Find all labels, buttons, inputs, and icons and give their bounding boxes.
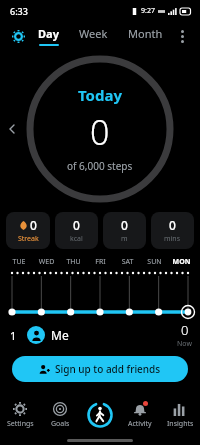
staticText: 0 xyxy=(30,217,37,233)
staticText: SUN xyxy=(141,257,168,267)
staticText: Streak xyxy=(18,234,39,244)
button[interactable]: Day xyxy=(36,26,61,46)
button[interactable]: Insights xyxy=(160,395,200,435)
button[interactable]: 0 xyxy=(6,212,50,249)
staticText: of 6,000 steps xyxy=(67,159,133,173)
staticText: TUE xyxy=(5,257,33,267)
staticText: 0 xyxy=(73,217,80,233)
staticText: THU xyxy=(60,257,87,267)
staticText: Settings xyxy=(7,419,34,429)
button[interactable]: Steps xyxy=(80,395,120,435)
staticText: m xyxy=(121,234,128,244)
staticText: Now xyxy=(177,339,192,349)
staticText: mins xyxy=(164,234,181,244)
button[interactable]: Settings xyxy=(0,395,40,435)
staticText: Week xyxy=(79,26,108,41)
staticText: WED xyxy=(33,257,60,267)
staticText: MON xyxy=(168,257,195,267)
button[interactable]: Month xyxy=(126,26,165,46)
staticText: 0 xyxy=(169,217,176,233)
button[interactable]: Week xyxy=(77,26,110,46)
button[interactable]: More options xyxy=(170,24,194,48)
staticText: Me xyxy=(51,327,69,343)
button[interactable]: Previous day xyxy=(4,121,20,137)
button[interactable]: 0 xyxy=(55,212,98,249)
staticText: Goals xyxy=(51,419,70,429)
staticText: Activity xyxy=(128,419,152,429)
button[interactable]: Sign up to add friends xyxy=(12,356,188,382)
staticText: Insights xyxy=(167,419,194,429)
staticText: SAT xyxy=(114,257,141,267)
button[interactable]: Brightness xyxy=(6,24,30,48)
staticText: 0 xyxy=(181,321,189,339)
staticText: 9:27 xyxy=(141,6,155,16)
button[interactable]: Activity xyxy=(120,395,160,435)
staticText: Day xyxy=(38,26,59,41)
button[interactable]: 0 xyxy=(151,212,194,249)
staticText: kcal xyxy=(70,234,83,244)
staticText: 0 xyxy=(121,217,128,233)
button[interactable]: 0 xyxy=(103,212,146,249)
staticText: 1 xyxy=(10,328,17,343)
staticText: 0 xyxy=(90,109,110,155)
staticText: 6:33 xyxy=(10,5,28,17)
staticText: Today xyxy=(78,85,123,105)
staticText: Month xyxy=(128,26,163,41)
staticText: Sign up to add friends xyxy=(55,362,161,376)
button[interactable]: 1 xyxy=(0,320,200,350)
staticText: FRI xyxy=(87,257,114,267)
button[interactable]: Goals xyxy=(40,395,80,435)
